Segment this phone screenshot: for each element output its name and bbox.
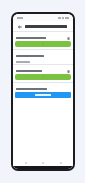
other: Delete [66,36,70,40]
button[interactable]: Back [21,160,31,166]
button[interactable]: Delete [13,67,73,74]
button[interactable] [13,52,73,59]
button[interactable]: Back [16,23,23,30]
button[interactable]: Home [38,160,48,166]
button[interactable]: Delete [13,34,73,41]
button[interactable] [15,92,71,98]
button[interactable] [15,74,71,80]
button[interactable] [15,41,71,47]
button[interactable]: Recents [56,160,66,166]
button[interactable] [13,85,73,92]
other: Delete [66,69,70,73]
